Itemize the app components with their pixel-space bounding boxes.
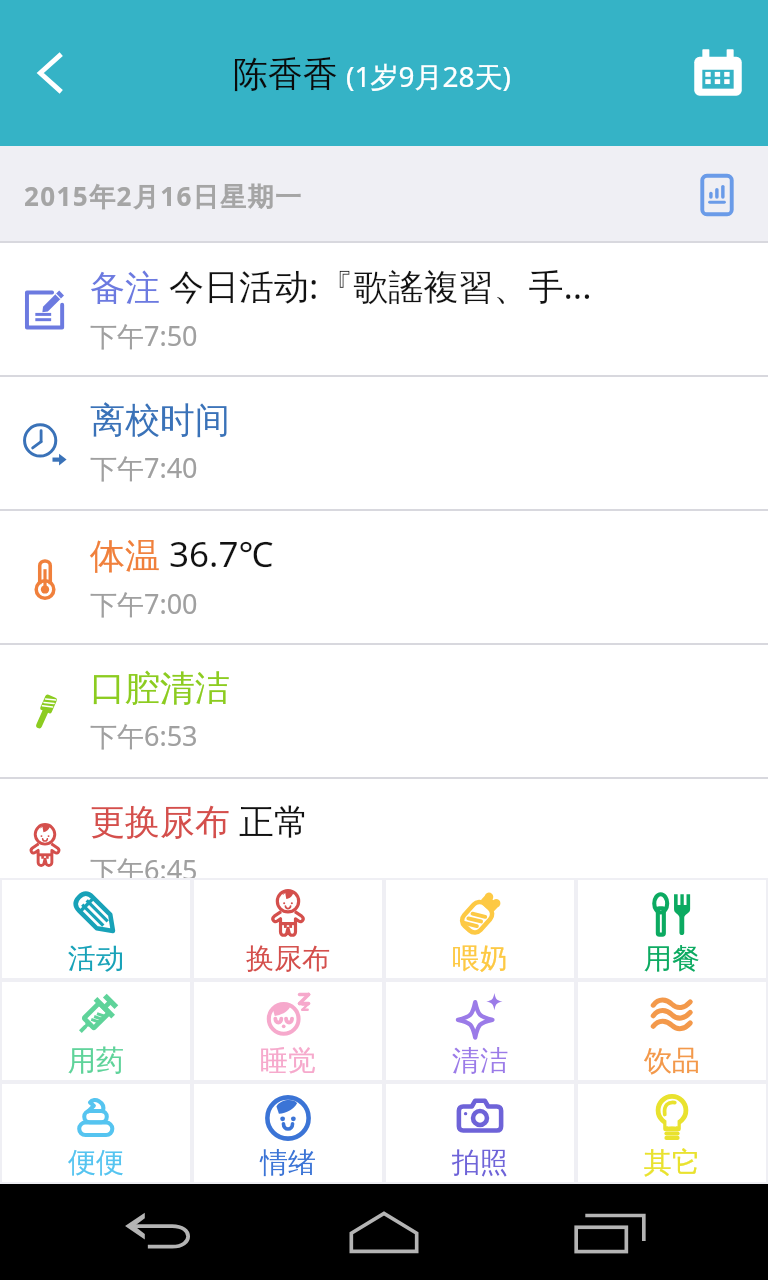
button[interactable]: Statistics bbox=[687, 165, 747, 225]
staticText: 喂奶 bbox=[452, 941, 508, 976]
button[interactable]: Back bbox=[14, 35, 90, 111]
button[interactable]: 换尿布 bbox=[194, 880, 382, 978]
staticText: 更换尿布 bbox=[90, 800, 230, 844]
staticText: 离校时间 bbox=[90, 398, 230, 442]
staticText: 用药 bbox=[68, 1043, 124, 1078]
staticText: 口腔清洁 bbox=[90, 666, 230, 710]
button[interactable]: 用餐 bbox=[578, 880, 766, 978]
button[interactable]: 体温 bbox=[0, 511, 768, 645]
button[interactable]: 活动 bbox=[2, 880, 190, 978]
button[interactable]: 睡觉 bbox=[194, 982, 382, 1080]
button[interactable]: 其它 bbox=[578, 1084, 766, 1182]
staticText: 用餐 bbox=[644, 941, 700, 976]
staticText: 下午7:00 bbox=[90, 585, 198, 622]
staticText: 今日活动:『歌謠複習、手... bbox=[169, 262, 592, 310]
staticText: 饮品 bbox=[644, 1043, 700, 1078]
button[interactable]: 便便 bbox=[2, 1084, 190, 1182]
button[interactable]: 情绪 bbox=[194, 1084, 382, 1182]
staticText: 活动 bbox=[68, 941, 124, 976]
button[interactable]: Recent apps bbox=[554, 1184, 666, 1280]
staticText: 陈香香 bbox=[233, 52, 338, 96]
button[interactable]: 离校时间 bbox=[0, 377, 768, 511]
button[interactable]: Back bbox=[104, 1184, 216, 1280]
button[interactable]: 清洁 bbox=[386, 982, 574, 1080]
staticText: 其它 bbox=[644, 1145, 700, 1180]
button[interactable]: 备注 bbox=[0, 243, 768, 377]
staticText: 备注 bbox=[90, 266, 160, 310]
button[interactable]: 拍照 bbox=[386, 1084, 574, 1182]
button[interactable]: Calendar bbox=[680, 35, 756, 111]
staticText: 便便 bbox=[68, 1145, 124, 1180]
staticText: 正常 bbox=[239, 800, 309, 844]
staticText: 36.7℃ bbox=[169, 530, 274, 578]
staticText: 换尿布 bbox=[246, 941, 330, 976]
button[interactable]: 更换尿布 bbox=[0, 779, 768, 913]
staticText: 下午7:50 bbox=[90, 317, 198, 354]
staticText: 清洁 bbox=[452, 1043, 508, 1078]
staticText: 下午7:40 bbox=[90, 449, 198, 486]
staticText: 体温 bbox=[90, 534, 160, 578]
staticText: 情绪 bbox=[260, 1145, 316, 1180]
staticText: 拍照 bbox=[452, 1145, 508, 1180]
button[interactable]: 喂奶 bbox=[386, 880, 574, 978]
button[interactable]: 用药 bbox=[2, 982, 190, 1080]
button[interactable]: 饮品 bbox=[578, 982, 766, 1080]
staticText: (1岁9月28天) bbox=[346, 57, 511, 95]
staticText: 下午6:53 bbox=[90, 717, 198, 754]
button[interactable]: Home bbox=[328, 1184, 440, 1280]
staticText: 下午6:45 bbox=[90, 851, 198, 888]
button[interactable]: 口腔清洁 bbox=[0, 645, 768, 779]
staticText: 2015年2月16日星期一 bbox=[24, 178, 303, 214]
staticText: 睡觉 bbox=[260, 1043, 316, 1078]
